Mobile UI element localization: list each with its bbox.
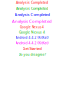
staticText: Analysis Completed <box>16 6 48 11</box>
staticText: Android 4.4.2 (KitKat) <box>15 41 48 45</box>
staticText: Analysis Completed <box>12 18 52 24</box>
staticText: Analysis Completed <box>14 12 49 17</box>
staticText: Google Nexus 4 <box>20 25 44 29</box>
staticText: Android 4.4.2 (KitKat) <box>15 36 48 40</box>
staticText: Get Started <box>22 46 41 51</box>
staticText: Google Nexus 4 <box>19 30 45 35</box>
staticText: Analysis Completed <box>16 0 48 5</box>
staticText: Do you disagree? <box>18 52 45 57</box>
